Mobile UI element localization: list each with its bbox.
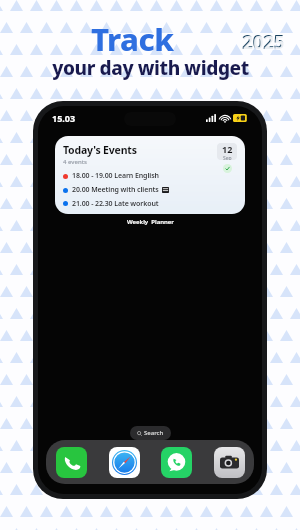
button[interactable]: Search	[130, 426, 171, 440]
button[interactable]: 12	[217, 143, 237, 160]
staticText: 2025	[243, 30, 285, 56]
staticText: Search	[144, 429, 164, 437]
staticText: 12	[222, 143, 233, 155]
staticText: Weekly Planner	[127, 218, 174, 226]
staticText: 20.00 Meeting with clients	[72, 185, 159, 195]
button[interactable]: Camera	[213, 446, 245, 478]
staticText: 21.00 - 22.30 Late workout	[72, 199, 159, 207]
button[interactable]: Today's Events	[55, 136, 245, 214]
button[interactable]: WhatsApp	[160, 446, 192, 478]
button[interactable]: Phone	[55, 446, 87, 478]
staticText: Sep	[223, 155, 232, 160]
staticText: 4 events	[63, 158, 87, 166]
staticText: Track	[91, 18, 174, 60]
staticText: 15.03	[52, 112, 76, 124]
button[interactable]: Safari	[108, 446, 140, 478]
staticText: 18.00 - 19.00 Learn English	[72, 171, 159, 181]
staticText: 2025	[242, 29, 284, 55]
staticText: your day with widget	[52, 55, 249, 81]
staticText: Today's Events	[63, 143, 137, 157]
